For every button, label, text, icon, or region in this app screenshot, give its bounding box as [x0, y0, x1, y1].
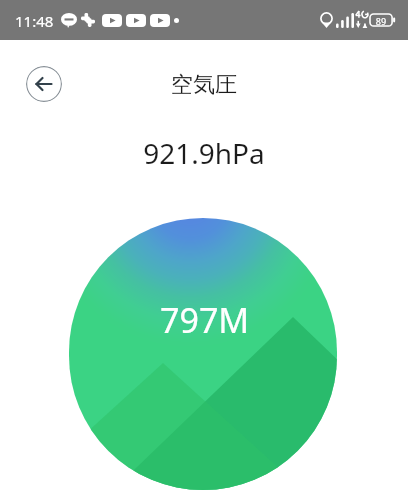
button[interactable]: Back [26, 66, 62, 102]
staticText: 797M [160, 297, 250, 343]
staticText: 空気圧 [0, 71, 408, 99]
staticText: 11:48 [15, 11, 54, 31]
staticText: 89 [370, 15, 392, 27]
staticText: 921.9hPa [0, 134, 408, 172]
